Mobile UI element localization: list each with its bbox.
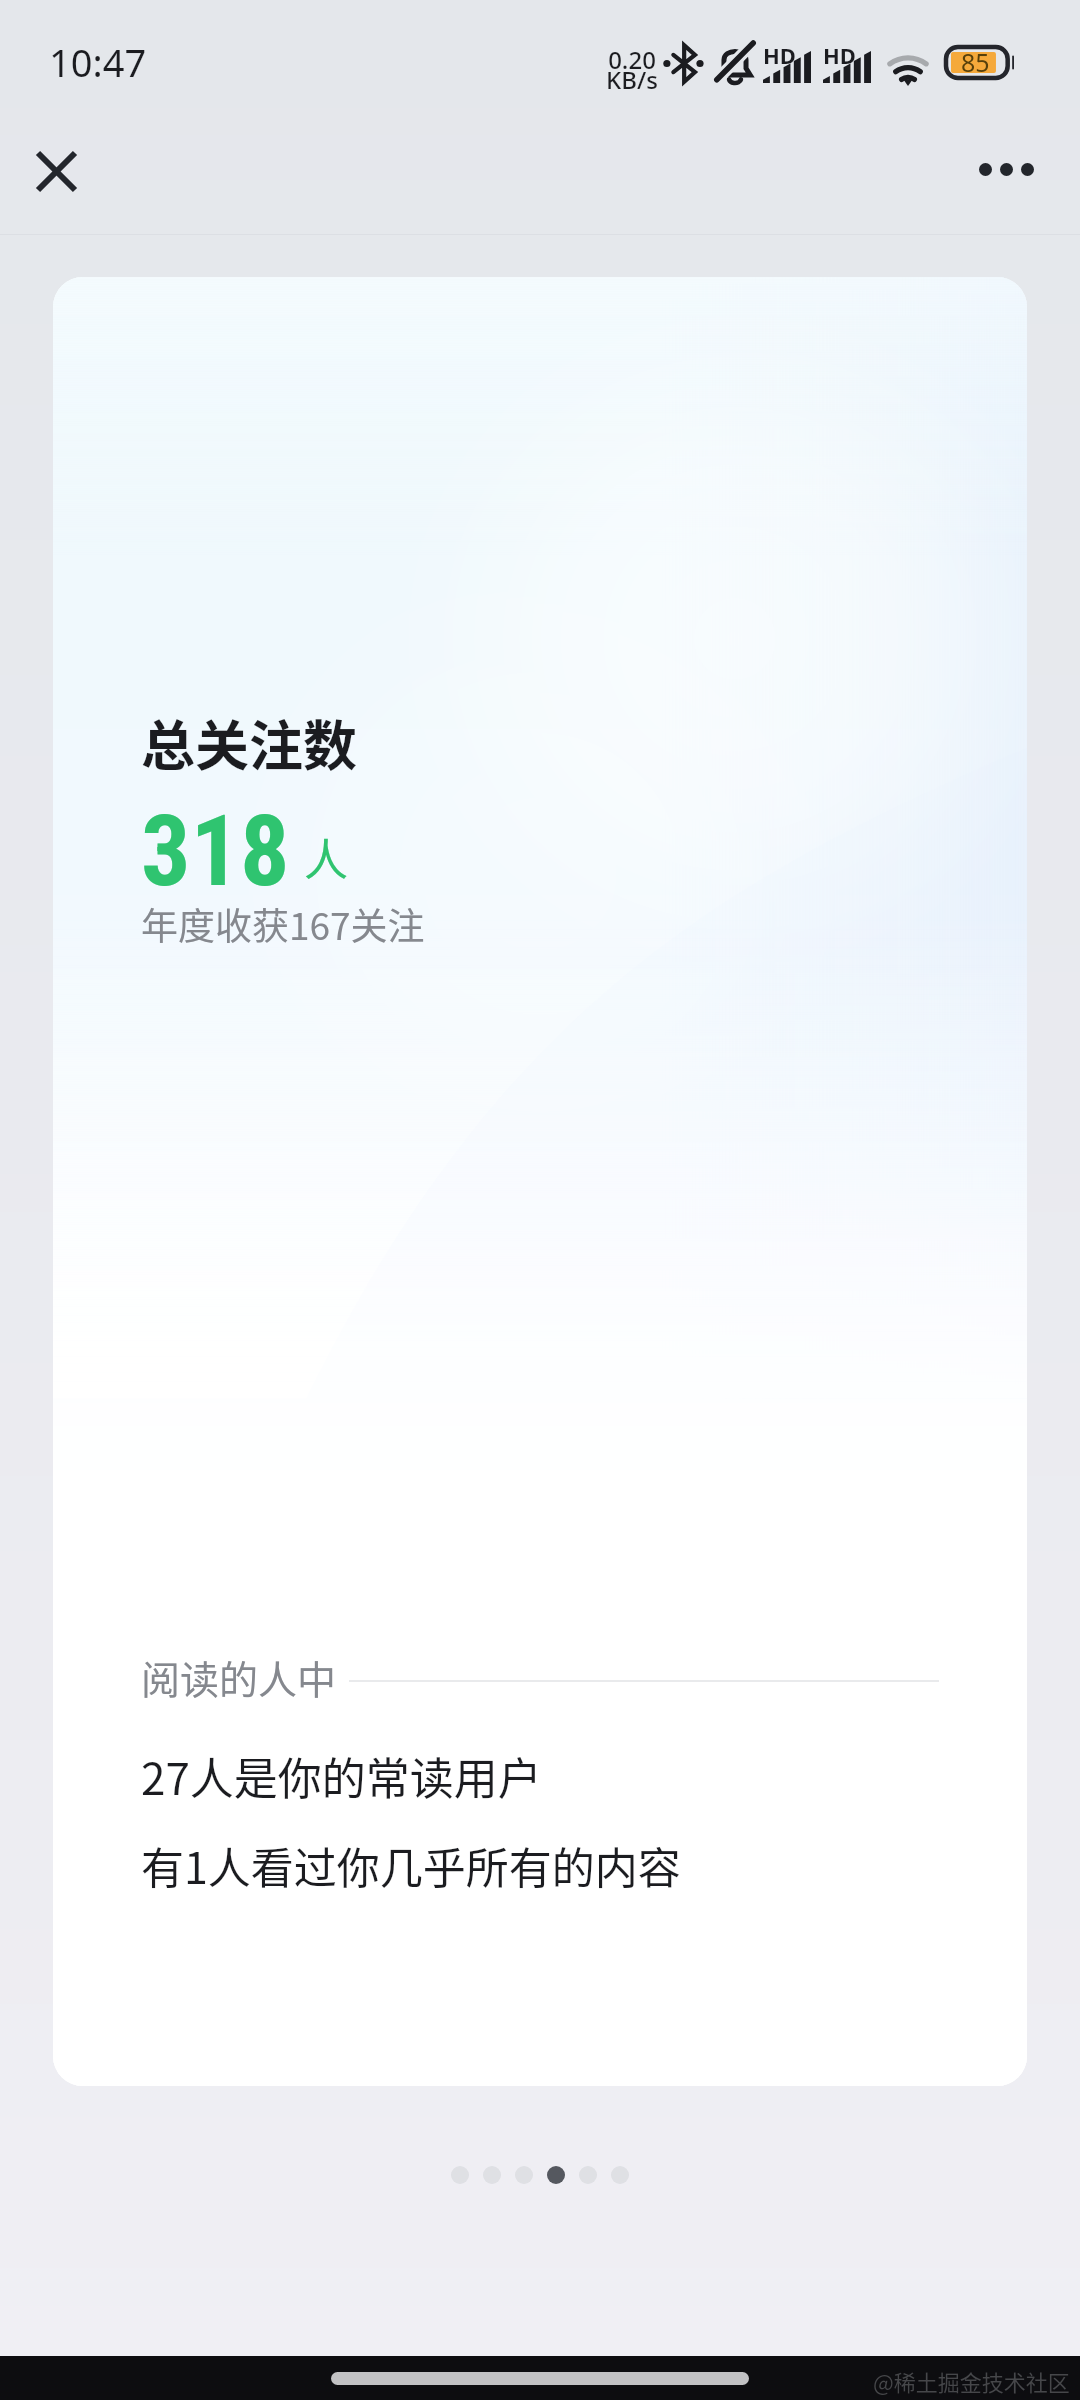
staticText: HD [823,40,856,70]
button[interactable]: More options [963,126,1049,212]
staticText: 总关注数 [141,703,357,781]
button[interactable] [451,2166,469,2184]
button[interactable]: 总关注数 [53,277,1027,2086]
staticText: 阅读的人中 [141,1649,337,1705]
button[interactable] [483,2166,501,2184]
staticText: 年度收获167关注 [141,897,425,951]
button[interactable] [579,2166,597,2184]
staticText: 人 [304,825,348,889]
staticText: HD [763,40,796,70]
staticText: 0.20 KB/s [606,43,658,96]
button[interactable] [611,2166,629,2184]
staticText: 10:47 [49,36,147,88]
staticText: 有1人看过你几乎所有的内容 [141,1834,681,1896]
staticText: 318 [141,794,290,909]
button[interactable] [515,2166,533,2184]
staticText: 27人是你的常读用户 [141,1744,542,1808]
staticText: @稀土掘金技术社区 [873,2365,1070,2397]
button[interactable] [547,2166,565,2184]
staticText: 85 [961,45,990,79]
button[interactable]: Close [13,128,99,214]
